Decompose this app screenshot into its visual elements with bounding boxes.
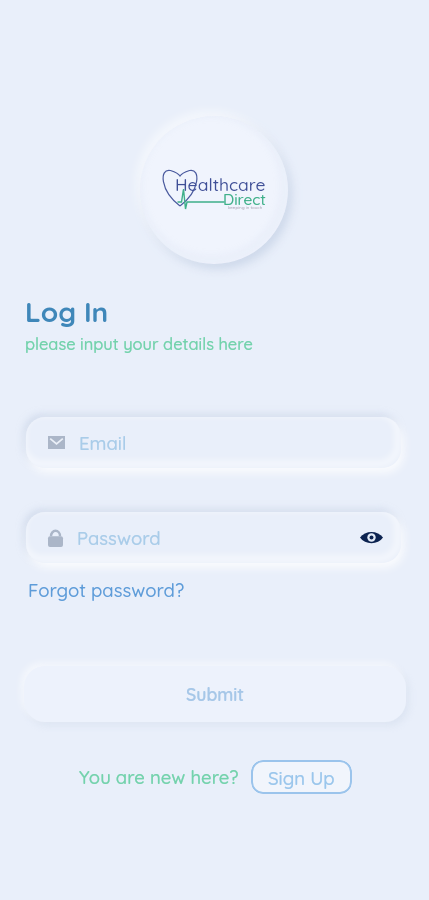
- staticText: Healthcare: [175, 173, 266, 195]
- button[interactable]: Forgot password?: [28, 578, 185, 601]
- button[interactable]: Email: [26, 417, 401, 468]
- button[interactable]: Submit: [24, 666, 406, 722]
- staticText: keeping in touch: [228, 204, 263, 210]
- staticText: Email: [79, 431, 127, 454]
- button[interactable]: Sign Up: [251, 760, 352, 794]
- staticText: Direct: [223, 189, 266, 208]
- staticText: Log In: [25, 294, 109, 329]
- staticText: please input your details here: [25, 334, 253, 354]
- button[interactable]: Show password: [360, 530, 383, 545]
- staticText: Forgot password?: [28, 578, 185, 601]
- staticText: You are new here?: [79, 765, 239, 788]
- staticText: Password: [77, 526, 161, 549]
- staticText: Sign Up: [268, 766, 335, 789]
- button[interactable]: Password: [26, 512, 401, 563]
- staticText: Submit: [186, 683, 245, 705]
